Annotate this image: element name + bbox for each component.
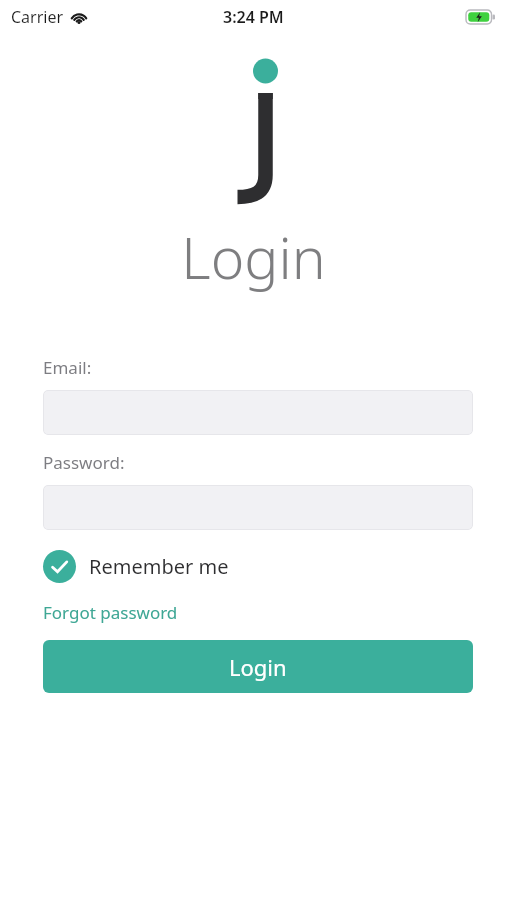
staticText: Email:	[43, 356, 92, 379]
staticText: Login	[0, 218, 507, 296]
staticText: 3:24 PM	[223, 6, 284, 28]
staticText: Login	[229, 652, 287, 682]
staticText: Remember me	[89, 553, 229, 580]
button[interactable]: Forgot password	[43, 599, 178, 626]
staticText: Carrier	[11, 6, 64, 28]
button[interactable]: Remember me	[43, 547, 229, 586]
staticText: Forgot password	[43, 601, 178, 624]
staticText: Password:	[43, 451, 125, 474]
button[interactable]: Login	[43, 640, 473, 693]
